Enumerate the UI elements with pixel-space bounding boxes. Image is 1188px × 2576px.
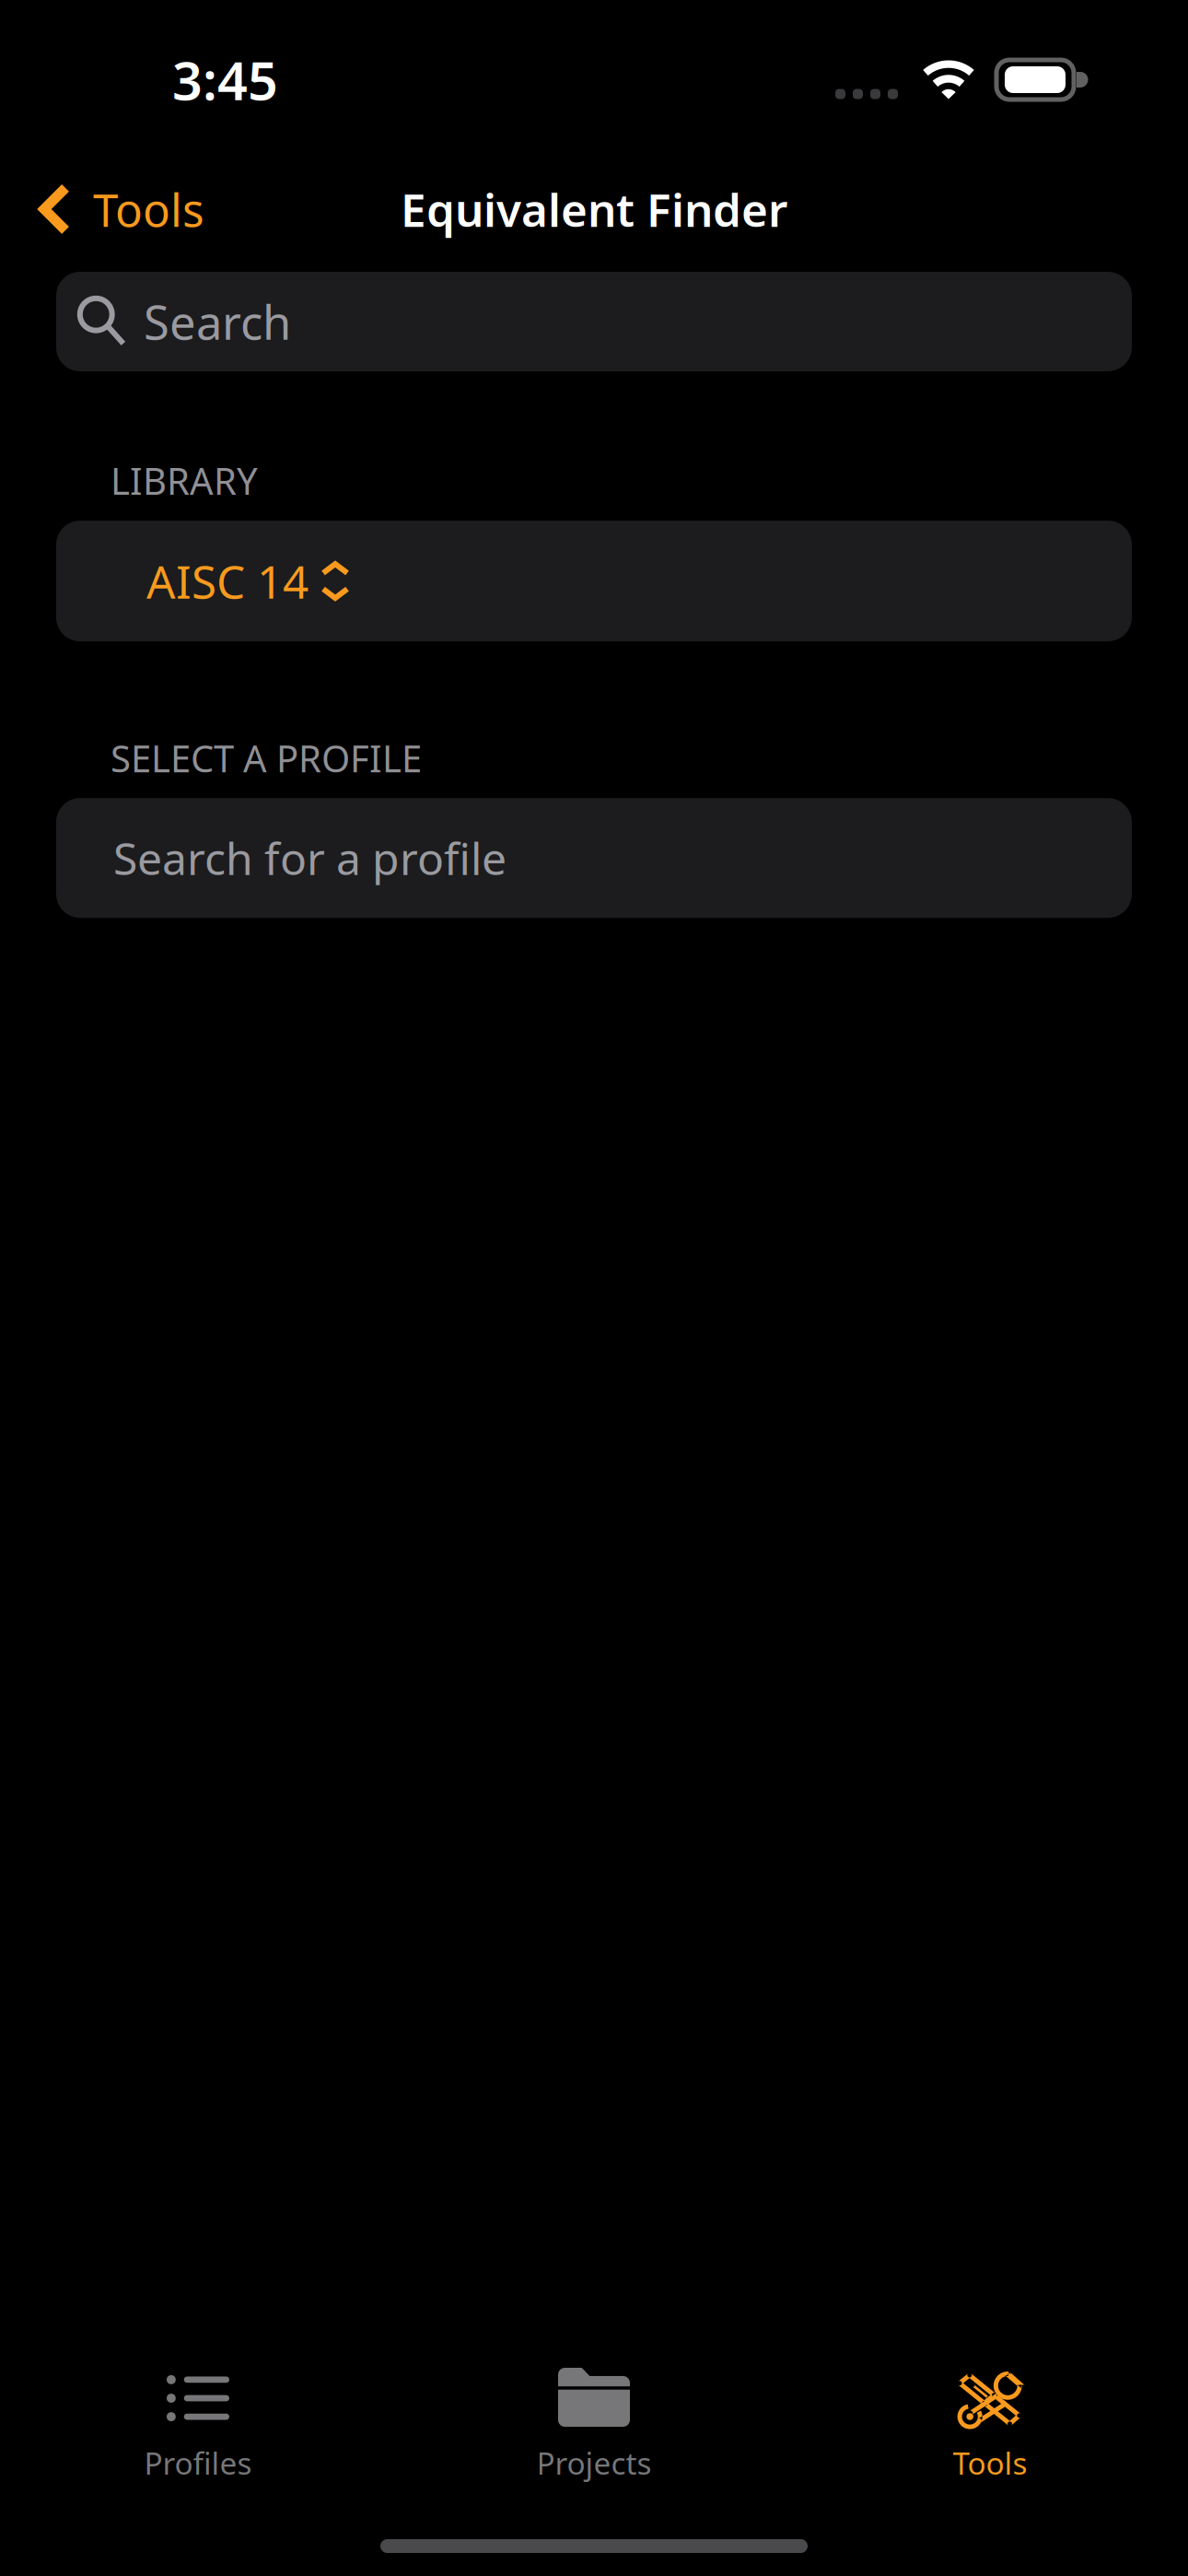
staticText: Profiles xyxy=(144,2442,252,2483)
button[interactable]: Profiles xyxy=(0,2363,396,2500)
staticText: Search for a profile xyxy=(113,829,507,887)
staticText: Projects xyxy=(536,2442,652,2483)
staticText: SELECT A PROFILE xyxy=(111,733,422,782)
staticText: Tools xyxy=(953,2442,1027,2483)
staticText: Tools xyxy=(93,179,204,239)
button[interactable]: Tools xyxy=(792,2363,1188,2500)
staticText: AISC 14 xyxy=(146,551,309,611)
staticText: LIBRARY xyxy=(111,456,258,505)
staticText: 3:45 xyxy=(172,45,278,115)
button[interactable]: Tools xyxy=(0,159,227,259)
staticText: Search xyxy=(144,291,291,353)
button[interactable]: Search for a profile xyxy=(0,798,1188,918)
button[interactable]: Search xyxy=(0,259,1188,371)
staticText: Equivalent Finder xyxy=(401,179,787,239)
button[interactable]: AISC 14 xyxy=(0,521,1188,641)
button[interactable]: Projects xyxy=(396,2363,792,2500)
